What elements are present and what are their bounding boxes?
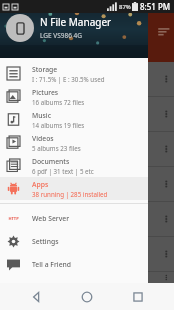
staticText: Documents bbox=[32, 157, 70, 166]
button[interactable]: Tell a Friend bbox=[0, 253, 148, 276]
button[interactable]: Settings bbox=[0, 230, 148, 253]
button[interactable]: Back bbox=[21, 283, 51, 310]
staticText: 38 running | 285 installed bbox=[32, 190, 108, 198]
button[interactable] bbox=[0, 237, 174, 271]
button[interactable]: Apps bbox=[0, 177, 148, 200]
staticText: HTTP bbox=[8, 216, 19, 221]
button[interactable]: Home bbox=[72, 283, 102, 310]
button[interactable]: Sort bbox=[155, 22, 173, 40]
staticText: 16 albums 72 files bbox=[32, 98, 85, 106]
button[interactable] bbox=[0, 272, 174, 283]
button[interactable] bbox=[0, 202, 174, 236]
button[interactable]: Recents bbox=[123, 283, 153, 310]
button[interactable]: Documents bbox=[0, 154, 148, 177]
button[interactable] bbox=[0, 97, 174, 131]
staticText: Videos bbox=[32, 134, 54, 143]
button[interactable]: Device bbox=[6, 14, 34, 42]
button[interactable] bbox=[0, 62, 174, 96]
staticText: 14 albums 19 files bbox=[32, 121, 85, 129]
staticText: N File Manager bbox=[40, 15, 112, 29]
button[interactable]: Pictures bbox=[0, 85, 148, 108]
staticText: Web Server bbox=[32, 214, 70, 223]
staticText: 6 pdf | 31 text | 5 etc bbox=[32, 167, 94, 175]
staticText: I : 71.5% | E : 30.5% used bbox=[32, 75, 105, 83]
button[interactable]: Storage bbox=[0, 62, 148, 85]
staticText: Settings bbox=[32, 237, 59, 246]
staticText: Pictures bbox=[32, 88, 59, 97]
staticText: Storage bbox=[32, 65, 58, 74]
staticText: 5 albums 23 files bbox=[32, 144, 81, 152]
staticText: Music bbox=[32, 111, 51, 120]
button[interactable]: Videos bbox=[0, 131, 148, 154]
staticText: 87% bbox=[119, 3, 131, 11]
staticText: 8:51 PM bbox=[140, 1, 171, 12]
button[interactable]: HTTP bbox=[0, 207, 148, 230]
staticText: Apps bbox=[32, 180, 49, 189]
staticText: Tell a Friend bbox=[32, 260, 72, 269]
button[interactable] bbox=[0, 167, 174, 201]
button[interactable]: Music bbox=[0, 108, 148, 131]
button[interactable] bbox=[0, 132, 174, 166]
button[interactable]: Feedback bbox=[0, 276, 148, 299]
staticText: LGE VS986 4G bbox=[40, 31, 83, 40]
